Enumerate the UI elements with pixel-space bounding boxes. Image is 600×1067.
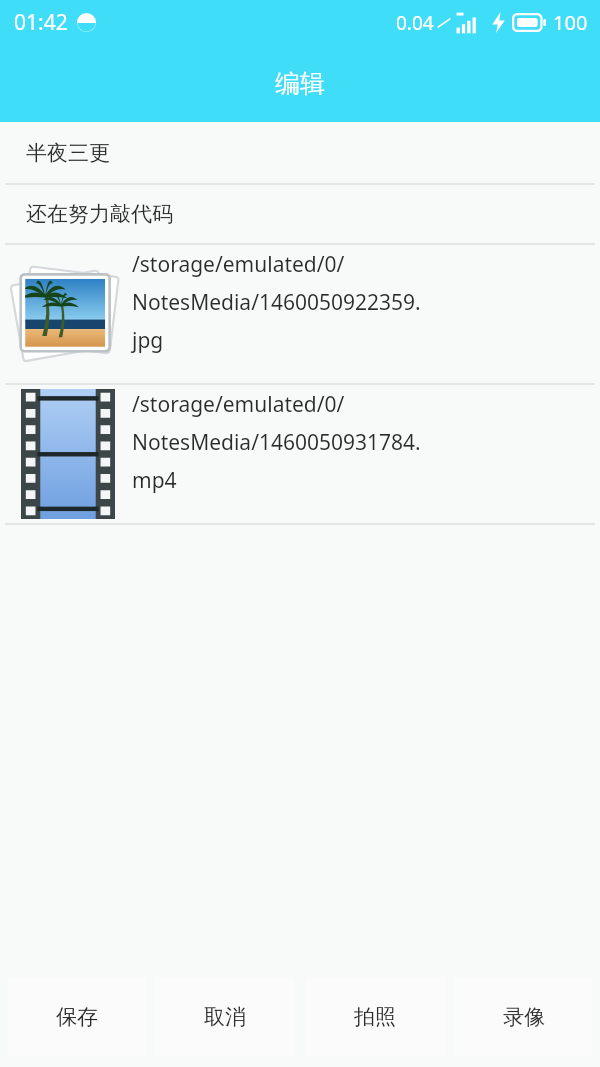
staticText: NotesMedia/1460050931784. — [132, 428, 421, 457]
button[interactable]: 保存 — [8, 977, 145, 1056]
staticText: /storage/emulated/0/ — [132, 390, 345, 419]
staticText: 保存 — [56, 1004, 98, 1030]
staticText: 0.04 — [396, 10, 434, 36]
staticText: 编辑 — [275, 68, 325, 99]
other: Image attachment — [11, 253, 125, 375]
staticText: 还在努力敲代码 — [26, 201, 173, 227]
button[interactable]: 取消 — [155, 977, 295, 1056]
staticText: 取消 — [204, 1004, 246, 1030]
staticText: /storage/emulated/0/ — [132, 250, 345, 279]
staticText: 半夜三更 — [26, 140, 110, 166]
button[interactable]: 半夜三更 — [0, 122, 600, 183]
staticText: NotesMedia/1460050922359. — [132, 288, 421, 317]
button[interactable]: Video attachment — [0, 385, 600, 523]
staticText: jpg — [132, 326, 164, 355]
other: Video attachment — [21, 389, 115, 519]
button[interactable]: 还在努力敲代码 — [0, 185, 600, 243]
staticText: 录像 — [503, 1004, 545, 1030]
staticText: 100 — [553, 9, 588, 36]
button[interactable]: 录像 — [455, 977, 592, 1056]
staticText: mp4 — [132, 466, 177, 495]
button[interactable]: Image attachment — [0, 245, 600, 383]
button[interactable]: 拍照 — [305, 977, 445, 1056]
staticText: 拍照 — [354, 1004, 396, 1030]
staticText: 01:42 — [14, 8, 68, 37]
